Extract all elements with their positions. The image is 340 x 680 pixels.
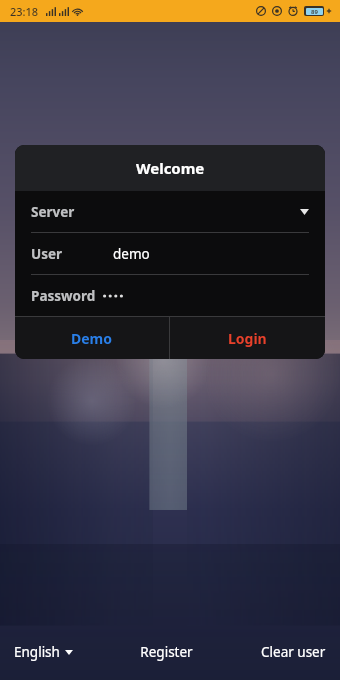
other: Select language	[65, 650, 73, 655]
button[interactable]: User	[15, 233, 325, 274]
staticText: Password	[31, 287, 96, 305]
button[interactable]: Clear user	[261, 643, 326, 661]
button[interactable]: Server	[15, 191, 325, 232]
button[interactable]: Demo	[15, 317, 169, 359]
staticText: Server	[31, 203, 75, 221]
button[interactable]: Login	[170, 317, 325, 359]
staticText: English	[14, 643, 60, 661]
staticText: 23:18	[10, 4, 39, 19]
button[interactable]: Register	[140, 643, 193, 661]
staticText: 89	[311, 8, 318, 15]
button[interactable]: English	[14, 643, 73, 661]
staticText: Welcome	[136, 158, 205, 178]
other: Select server	[300, 209, 309, 215]
staticText: User	[31, 245, 63, 263]
button[interactable]: Password	[15, 275, 325, 316]
staticText: Demo	[71, 329, 113, 348]
staticText: demo	[113, 245, 150, 263]
staticText: Register	[140, 643, 193, 661]
staticText: Login	[228, 329, 267, 348]
staticText: Clear user	[261, 643, 326, 661]
